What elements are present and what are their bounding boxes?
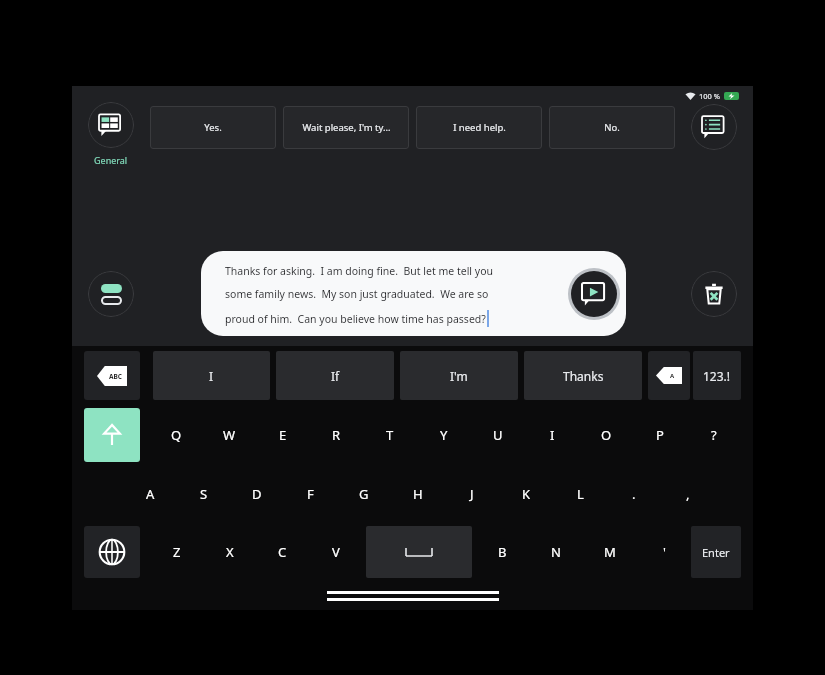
button[interactable]: Yes. bbox=[150, 106, 276, 149]
button[interactable]: Y bbox=[417, 408, 471, 462]
button[interactable]: O bbox=[579, 408, 633, 462]
staticText: M bbox=[604, 543, 616, 561]
staticText: ? bbox=[711, 426, 717, 444]
button[interactable]: . bbox=[607, 468, 661, 520]
button[interactable]: General category bbox=[72, 102, 150, 172]
staticText: General bbox=[94, 154, 128, 166]
button[interactable]: , bbox=[661, 468, 715, 520]
staticText: S bbox=[200, 485, 208, 503]
staticText: N bbox=[551, 543, 561, 561]
staticText: Y bbox=[440, 426, 448, 444]
staticText: E bbox=[279, 426, 287, 444]
staticText: G bbox=[359, 485, 369, 503]
staticText: A bbox=[670, 372, 675, 380]
button[interactable]: I'm bbox=[400, 351, 518, 400]
button[interactable]: Speak message bbox=[571, 271, 617, 317]
staticText: No. bbox=[604, 121, 620, 134]
staticText: I'm bbox=[450, 368, 468, 384]
button[interactable]: Q bbox=[150, 408, 203, 462]
staticText: Q bbox=[171, 426, 182, 444]
button[interactable]: D bbox=[230, 468, 283, 520]
button[interactable]: X bbox=[203, 526, 256, 578]
staticText: U bbox=[493, 426, 503, 444]
staticText: X bbox=[226, 543, 234, 561]
button[interactable]: R bbox=[309, 408, 363, 462]
button[interactable]: Navigation bbox=[327, 591, 499, 601]
staticText: V bbox=[332, 543, 340, 561]
staticText: ' bbox=[663, 543, 666, 561]
button[interactable]: If bbox=[276, 351, 394, 400]
button[interactable]: Toggle keyboard layout bbox=[88, 271, 134, 317]
button[interactable]: P bbox=[633, 408, 687, 462]
staticText: R bbox=[332, 426, 341, 444]
staticText: proud of him. Can you believe how time h… bbox=[225, 312, 486, 326]
button[interactable]: Clear message bbox=[691, 271, 737, 317]
staticText: , bbox=[686, 485, 690, 503]
button[interactable]: Change language bbox=[84, 526, 140, 578]
button[interactable]: S bbox=[177, 468, 230, 520]
staticText: Thanks for asking. I am doing fine. But … bbox=[225, 264, 494, 278]
staticText: Yes. bbox=[204, 121, 222, 134]
button[interactable]: Delete all text bbox=[84, 351, 140, 400]
staticText: W bbox=[223, 426, 236, 444]
staticText: H bbox=[413, 485, 423, 503]
staticText: I need help. bbox=[453, 121, 506, 134]
button[interactable]: N bbox=[529, 526, 583, 578]
staticText: Thanks bbox=[563, 368, 604, 384]
staticText: ABC bbox=[109, 372, 122, 381]
staticText: Wait please, I'm ty… bbox=[302, 121, 391, 134]
staticText: O bbox=[601, 426, 612, 444]
button[interactable]: Space bbox=[366, 526, 472, 578]
button[interactable]: C bbox=[256, 526, 309, 578]
button[interactable]: E bbox=[256, 408, 309, 462]
staticText: I bbox=[550, 426, 555, 444]
button[interactable]: Shift bbox=[84, 408, 140, 462]
staticText: K bbox=[522, 485, 531, 503]
staticText: 100 % bbox=[699, 91, 721, 101]
button[interactable]: Z bbox=[150, 526, 203, 578]
button[interactable]: ? bbox=[687, 408, 741, 462]
button[interactable]: I bbox=[525, 408, 579, 462]
staticText: 123.! bbox=[703, 368, 731, 384]
button[interactable]: F bbox=[283, 468, 337, 520]
staticText: J bbox=[470, 485, 474, 503]
button[interactable]: A bbox=[124, 468, 177, 520]
button[interactable]: No. bbox=[549, 106, 675, 149]
staticText: B bbox=[498, 543, 507, 561]
button[interactable]: H bbox=[391, 468, 445, 520]
button[interactable]: Thanks bbox=[524, 351, 642, 400]
staticText: L bbox=[577, 485, 584, 503]
button[interactable]: W bbox=[203, 408, 256, 462]
staticText: . bbox=[632, 485, 636, 503]
button[interactable]: ' bbox=[637, 526, 691, 578]
button[interactable]: I bbox=[153, 351, 270, 400]
staticText: D bbox=[252, 485, 262, 503]
button[interactable]: J bbox=[445, 468, 499, 520]
staticText: If bbox=[331, 368, 340, 384]
staticText: Enter bbox=[702, 545, 730, 560]
button[interactable]: I need help. bbox=[416, 106, 542, 149]
staticText: A bbox=[146, 485, 155, 503]
button[interactable]: Wait please, I'm ty… bbox=[283, 106, 409, 149]
button[interactable]: V bbox=[309, 526, 363, 578]
button[interactable]: Backspace bbox=[648, 351, 690, 400]
staticText: some family news. My son just graduated.… bbox=[225, 287, 489, 301]
button[interactable]: U bbox=[471, 408, 525, 462]
button[interactable]: Thanks for asking. I am doing fine. But … bbox=[201, 251, 626, 336]
staticText: F bbox=[307, 485, 314, 503]
button[interactable]: Chat history bbox=[691, 104, 737, 150]
staticText: T bbox=[386, 426, 394, 444]
button[interactable]: Enter bbox=[691, 526, 741, 578]
button[interactable]: 123.! bbox=[693, 351, 741, 400]
button[interactable]: B bbox=[475, 526, 529, 578]
button[interactable]: K bbox=[499, 468, 553, 520]
staticText: Z bbox=[173, 543, 181, 561]
staticText: P bbox=[656, 426, 664, 444]
button[interactable]: G bbox=[337, 468, 391, 520]
staticText: C bbox=[278, 543, 287, 561]
button[interactable]: L bbox=[553, 468, 607, 520]
button[interactable]: T bbox=[363, 408, 417, 462]
staticText: I bbox=[209, 368, 214, 384]
button[interactable]: M bbox=[583, 526, 637, 578]
